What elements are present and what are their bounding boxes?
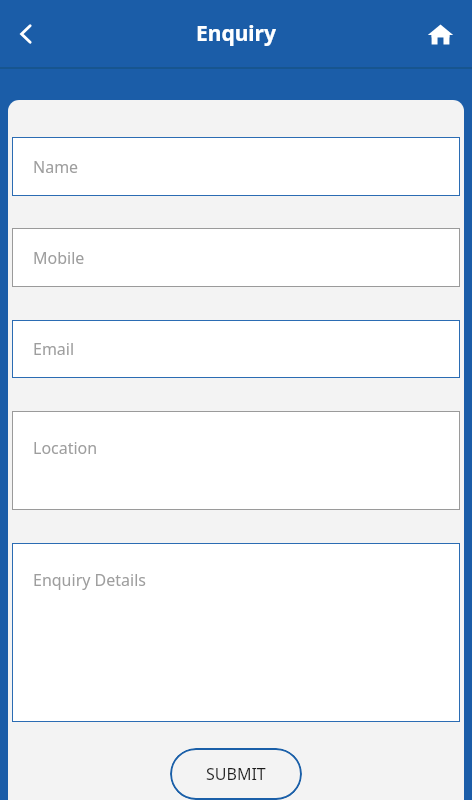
button[interactable]: Enquiry Details	[12, 543, 460, 722]
button[interactable]: Location	[12, 411, 460, 510]
button[interactable]: Name	[12, 137, 460, 196]
button[interactable]: Back	[4, 12, 48, 56]
staticText: Enquiry Details	[33, 569, 146, 591]
staticText: Name	[33, 156, 79, 178]
staticText: Email	[33, 338, 75, 360]
button[interactable]: SUBMIT	[170, 748, 302, 800]
button[interactable]: Email	[12, 320, 460, 378]
staticText: Location	[33, 437, 98, 459]
button[interactable]: Mobile	[12, 228, 460, 287]
staticText: SUBMIT	[206, 763, 266, 785]
button[interactable]: Home	[418, 12, 462, 56]
staticText: Mobile	[33, 247, 85, 269]
staticText: Enquiry	[196, 19, 276, 48]
